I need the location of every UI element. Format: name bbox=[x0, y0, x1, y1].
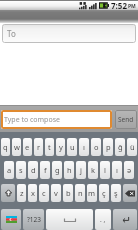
button[interactable]: v bbox=[51, 184, 61, 202]
button[interactable]: a bbox=[4, 161, 14, 179]
button[interactable]: k bbox=[88, 161, 98, 179]
staticText: q bbox=[3, 142, 8, 152]
staticText: To bbox=[7, 28, 16, 39]
button[interactable]: Backspace bbox=[123, 184, 137, 202]
staticText: g bbox=[55, 165, 60, 175]
button[interactable]: y bbox=[56, 138, 65, 156]
button[interactable]: o bbox=[91, 138, 101, 156]
staticText: a bbox=[7, 165, 12, 175]
button[interactable]: ?123 bbox=[23, 209, 44, 230]
button[interactable]: Enter bbox=[113, 209, 137, 230]
staticText: l bbox=[104, 165, 106, 175]
staticText: t bbox=[48, 142, 51, 152]
button[interactable]: z bbox=[17, 184, 26, 202]
button[interactable]: u bbox=[67, 138, 77, 156]
button[interactable]: ş bbox=[111, 184, 121, 202]
staticText: ?123 bbox=[27, 215, 41, 224]
button[interactable]: q bbox=[1, 138, 10, 156]
button[interactable]: e bbox=[23, 138, 32, 156]
button[interactable]: l bbox=[100, 161, 110, 179]
staticText: y bbox=[59, 142, 63, 152]
staticText: ı bbox=[83, 142, 85, 152]
staticText: u bbox=[70, 142, 75, 152]
button[interactable]: ı bbox=[112, 161, 122, 179]
button[interactable]: Space bbox=[46, 209, 93, 230]
button[interactable]: p bbox=[103, 138, 113, 156]
staticText: ğ bbox=[118, 142, 123, 152]
staticText: s bbox=[19, 165, 23, 175]
staticText: ı bbox=[116, 165, 118, 175]
staticText: . , bbox=[100, 215, 106, 224]
staticText: j bbox=[80, 165, 82, 175]
button[interactable]: ə bbox=[124, 161, 134, 179]
staticText: x bbox=[31, 188, 35, 198]
staticText: ə bbox=[127, 165, 132, 175]
button[interactable]: ç bbox=[99, 184, 109, 202]
button[interactable]: b bbox=[63, 184, 73, 202]
button[interactable]: To bbox=[2, 24, 136, 43]
button[interactable]: ı bbox=[79, 138, 89, 156]
staticText: o bbox=[94, 142, 99, 152]
staticText: Send bbox=[118, 115, 134, 124]
button[interactable]: d bbox=[28, 161, 38, 179]
button[interactable]: . , bbox=[95, 209, 111, 230]
staticText: c bbox=[42, 188, 46, 198]
button[interactable]: Type to compose bbox=[1, 110, 112, 129]
button[interactable]: Send bbox=[115, 110, 137, 129]
button[interactable]: c bbox=[39, 184, 49, 202]
staticText: k bbox=[91, 165, 96, 175]
button[interactable]: w bbox=[12, 138, 21, 156]
staticText: PM bbox=[128, 3, 136, 10]
staticText: m bbox=[88, 188, 96, 198]
button[interactable]: t bbox=[45, 138, 54, 156]
staticText: z bbox=[20, 188, 24, 198]
button[interactable]: s bbox=[16, 161, 26, 179]
staticText: w bbox=[14, 142, 20, 152]
staticText: Type to compose bbox=[4, 115, 60, 125]
staticText: ç bbox=[102, 188, 106, 198]
button[interactable]: Shift bbox=[1, 184, 15, 202]
button[interactable]: j bbox=[76, 161, 86, 179]
button[interactable]: f bbox=[40, 161, 50, 179]
button[interactable]: Change language bbox=[1, 209, 21, 230]
staticText: p bbox=[106, 142, 111, 152]
staticText: b bbox=[66, 188, 71, 198]
button[interactable]: m bbox=[87, 184, 97, 202]
button[interactable]: ü bbox=[127, 138, 137, 156]
staticText: 7:52 bbox=[111, 0, 127, 10]
button[interactable]: n bbox=[75, 184, 85, 202]
staticText: e bbox=[25, 142, 30, 152]
staticText: v bbox=[54, 188, 58, 198]
button[interactable]: g bbox=[52, 161, 62, 179]
staticText: ş bbox=[114, 188, 118, 198]
staticText: d bbox=[31, 165, 36, 175]
staticText: f bbox=[44, 165, 47, 175]
button[interactable]: ğ bbox=[115, 138, 125, 156]
staticText: h bbox=[67, 165, 72, 175]
button[interactable]: h bbox=[64, 161, 74, 179]
button[interactable]: r bbox=[34, 138, 43, 156]
staticText: ü bbox=[130, 142, 135, 152]
staticText: r bbox=[37, 142, 41, 152]
button[interactable]: x bbox=[28, 184, 37, 202]
staticText: n bbox=[78, 188, 83, 198]
